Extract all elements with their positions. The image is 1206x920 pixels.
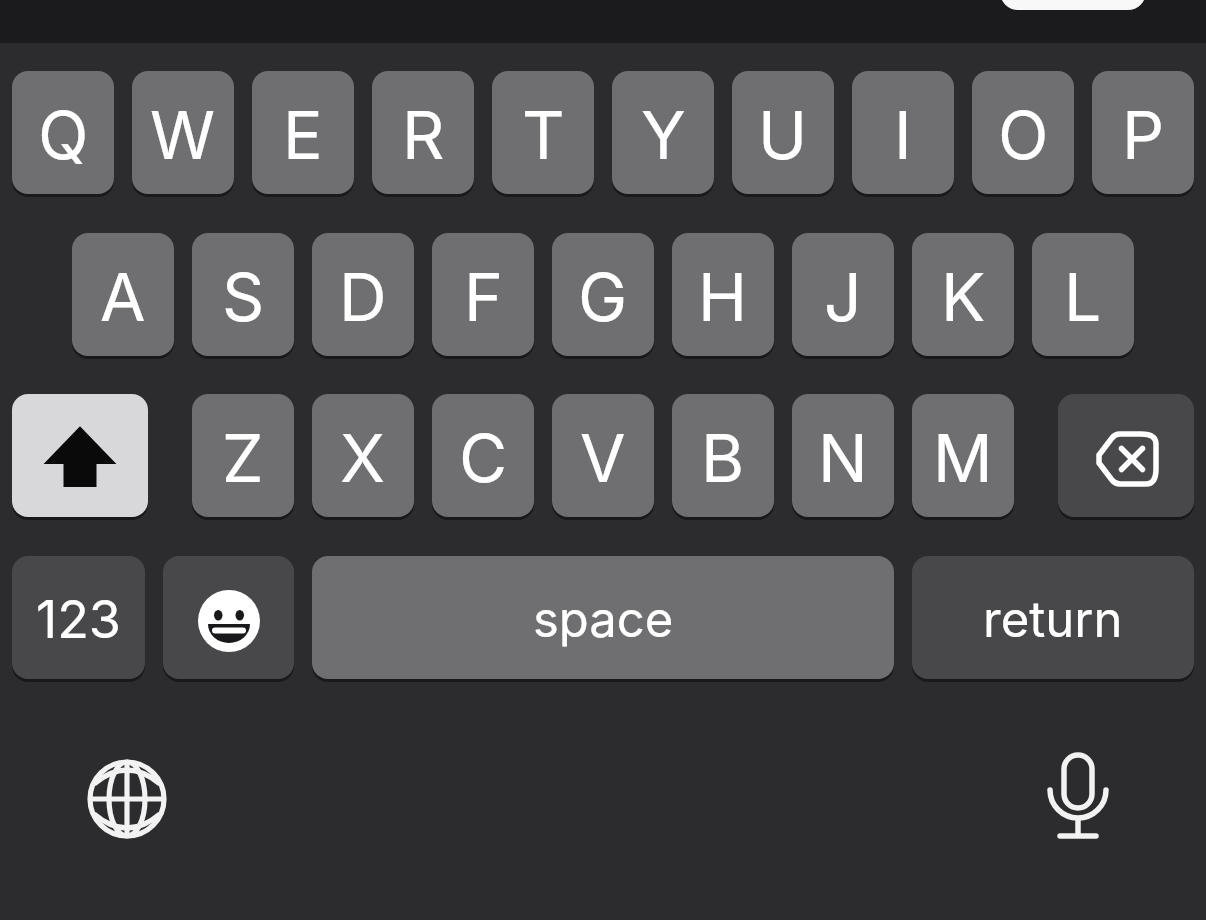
staticText: S	[222, 257, 265, 337]
staticText: M	[933, 418, 993, 498]
staticText: Q	[38, 95, 89, 175]
button[interactable]: I	[852, 71, 954, 194]
staticText: 123	[36, 588, 121, 651]
staticText: X	[340, 418, 386, 498]
staticText: Y	[641, 95, 686, 175]
staticText: C	[459, 418, 508, 498]
staticText: U	[758, 95, 808, 175]
button[interactable]: Y	[612, 71, 714, 194]
button[interactable]: U	[732, 71, 834, 194]
button[interactable]: K	[912, 233, 1014, 356]
button[interactable]: return	[912, 556, 1194, 679]
button[interactable]: F	[432, 233, 534, 356]
button[interactable]: space	[312, 556, 894, 679]
button[interactable]: M	[912, 394, 1014, 517]
staticText: R	[402, 95, 445, 175]
button[interactable]: Z	[192, 394, 294, 517]
button[interactable]: T	[492, 71, 594, 194]
button[interactable]: L	[1032, 233, 1134, 356]
button[interactable]	[1043, 748, 1113, 843]
staticText: Z	[222, 418, 264, 498]
staticText: F	[464, 257, 503, 337]
staticText: B	[701, 418, 745, 498]
staticText: D	[339, 257, 387, 337]
button[interactable]	[163, 556, 294, 679]
button[interactable]: R	[372, 71, 474, 194]
staticText: L	[1064, 257, 1102, 337]
staticText: return	[983, 590, 1123, 649]
staticText: W	[150, 95, 216, 175]
button[interactable]: Q	[12, 71, 114, 194]
staticText: K	[941, 257, 986, 337]
button[interactable]: W	[132, 71, 234, 194]
button[interactable]: B	[672, 394, 774, 517]
staticText: P	[1122, 95, 1165, 175]
button[interactable]: A	[72, 233, 174, 356]
staticText: space	[533, 590, 674, 649]
button[interactable]: E	[252, 71, 354, 194]
button[interactable]: S	[192, 233, 294, 356]
staticText: I	[894, 95, 912, 175]
staticText: E	[283, 95, 323, 175]
button[interactable]: 123	[12, 556, 145, 679]
button[interactable]: D	[312, 233, 414, 356]
staticText: G	[578, 257, 628, 337]
button[interactable]	[1058, 394, 1194, 517]
button[interactable]: N	[792, 394, 894, 517]
button[interactable]: J	[792, 233, 894, 356]
button[interactable]: G	[552, 233, 654, 356]
staticText: N	[818, 418, 868, 498]
staticText: O	[998, 95, 1049, 175]
staticText: J	[824, 257, 862, 337]
button[interactable]: C	[432, 394, 534, 517]
staticText: V	[580, 418, 626, 498]
button[interactable]: X	[312, 394, 414, 517]
button[interactable]	[12, 394, 148, 517]
button[interactable]: O	[972, 71, 1074, 194]
button[interactable]: P	[1092, 71, 1194, 194]
staticText: H	[698, 257, 748, 337]
button[interactable]: V	[552, 394, 654, 517]
button[interactable]	[84, 753, 170, 839]
button[interactable]: H	[672, 233, 774, 356]
staticText: T	[522, 95, 565, 175]
staticText: A	[100, 257, 146, 337]
